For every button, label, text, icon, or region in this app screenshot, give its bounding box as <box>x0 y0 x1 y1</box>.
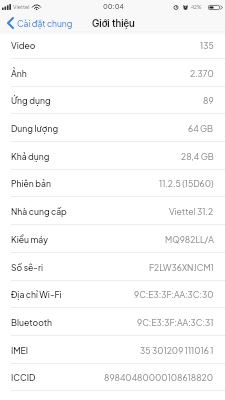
staticText: Viettel <box>13 3 30 10</box>
staticText: Giới thiệu <box>92 17 135 29</box>
staticText: 42% <box>191 4 202 10</box>
button[interactable]: Video <box>0 31 225 59</box>
staticText: Kiểu máy <box>11 234 49 245</box>
button[interactable]: Địa chỉ Wi-Fi <box>0 281 225 308</box>
staticText: 89 <box>203 95 214 106</box>
staticText: Video <box>11 40 36 51</box>
staticText: Cài đặt chung <box>17 18 73 29</box>
button[interactable]: Kiểu máy <box>0 225 225 253</box>
staticText: ICCID <box>11 372 36 383</box>
staticText: 2.370 <box>190 68 214 79</box>
button[interactable]: Ảnh <box>0 59 225 87</box>
staticText: Dung lượng <box>11 123 59 134</box>
staticText: Khả dụng <box>11 151 50 162</box>
staticText: 35 301209 111016 1 <box>140 345 214 356</box>
button[interactable]: Khả dụng <box>0 142 225 170</box>
staticText: 9C:E3:3F:AA:3C:31 <box>137 317 214 328</box>
staticText: 00:04 <box>103 2 124 10</box>
button[interactable]: Cài đặt chung <box>0 15 79 29</box>
staticText: Viettel 31.2 <box>169 206 214 217</box>
staticText: 64 GB <box>188 123 214 134</box>
staticText: Bluetooth <box>11 317 53 328</box>
staticText: MQ982LL/A <box>165 234 214 245</box>
staticText: Địa chỉ Wi-Fi <box>11 289 62 300</box>
button[interactable]: Nhà cung cấp <box>0 197 225 225</box>
staticText: 11.2.5 (15D60) <box>159 178 214 189</box>
button[interactable]: IMEI <box>0 336 225 364</box>
staticText: Ảnh <box>11 68 27 79</box>
button[interactable]: Ứng dụng <box>0 87 225 114</box>
button[interactable]: ICCID <box>0 364 225 391</box>
staticText: Nhà cung cấp <box>11 206 67 217</box>
staticText: 28,4 GB <box>181 151 214 162</box>
staticText: Ứng dụng <box>11 95 51 106</box>
button[interactable]: Số sê-ri <box>0 253 225 281</box>
staticText: 135 <box>200 40 214 51</box>
button[interactable]: Bluetooth <box>0 308 225 336</box>
staticText: Phiên bản <box>11 178 51 189</box>
staticText: 89840480000108618820 <box>104 372 214 383</box>
button[interactable]: Dung lượng <box>0 114 225 142</box>
button[interactable]: Phiên bản <box>0 170 225 197</box>
staticText: IMEI <box>11 345 29 356</box>
staticText: Số sê-ri <box>11 262 43 273</box>
staticText: 9C:E3:3F:AA:3C:30 <box>134 289 214 300</box>
staticText: F2LW36XNJCM1 <box>149 262 214 273</box>
